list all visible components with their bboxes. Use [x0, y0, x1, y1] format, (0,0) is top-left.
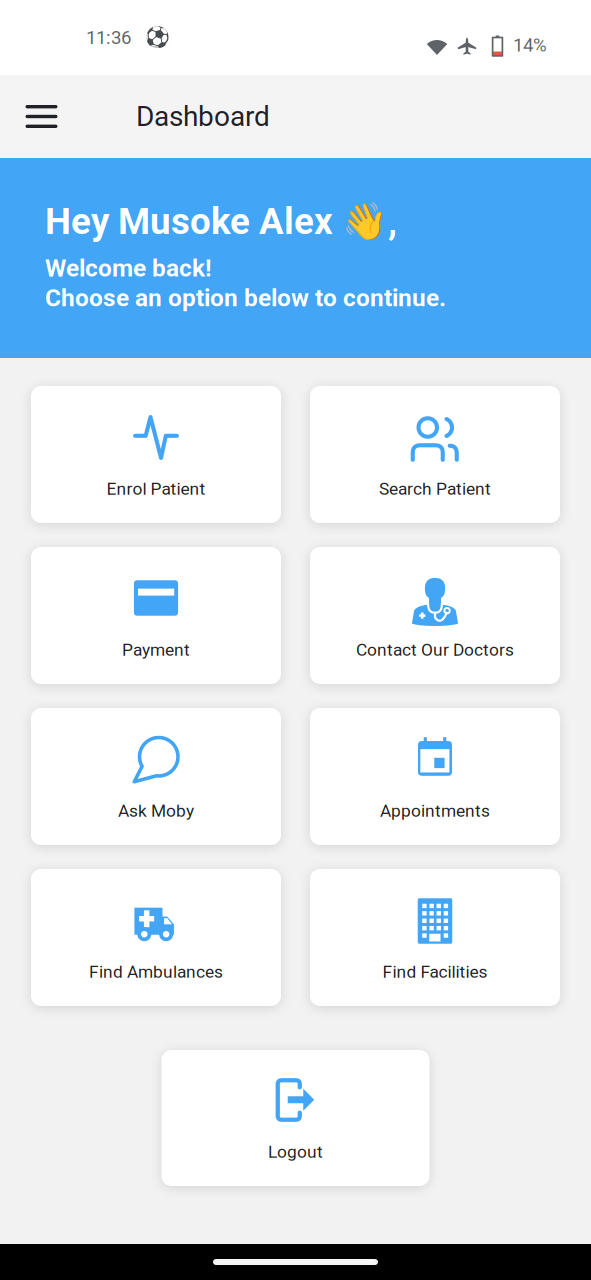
staticText: Ask Moby [118, 801, 194, 821]
button[interactable]: Search Patient [310, 386, 560, 523]
button[interactable]: Logout [161, 1050, 429, 1186]
button[interactable]: Appointments [310, 708, 560, 845]
staticText: Dashboard [136, 100, 270, 133]
staticText: Welcome back! [45, 254, 212, 283]
button[interactable]: Enrol Patient [31, 386, 281, 523]
staticText: Logout [268, 1142, 323, 1162]
staticText: Appointments [380, 801, 490, 821]
staticText: 11:36 [86, 27, 131, 48]
button[interactable]: Payment [31, 547, 281, 684]
staticText: 14% [513, 34, 547, 56]
button[interactable]: Ask Moby [31, 708, 281, 845]
staticText: Find Facilities [382, 962, 487, 982]
staticText: Find Ambulances [89, 962, 223, 982]
staticText: Hey Musoke Alex 👋, [45, 200, 397, 243]
staticText: Enrol Patient [106, 479, 205, 499]
staticText: Contact Our Doctors [356, 640, 514, 660]
button[interactable]: Menu [0, 75, 83, 158]
staticText: Payment [122, 640, 190, 660]
button[interactable]: Find Ambulances [31, 869, 281, 1006]
staticText: Search Patient [379, 479, 491, 499]
staticText: ⚽ [145, 26, 170, 49]
button[interactable]: Contact Our Doctors [310, 547, 560, 684]
button[interactable]: Find Facilities [310, 869, 560, 1006]
staticText: Choose an option below to continue. [45, 284, 446, 312]
